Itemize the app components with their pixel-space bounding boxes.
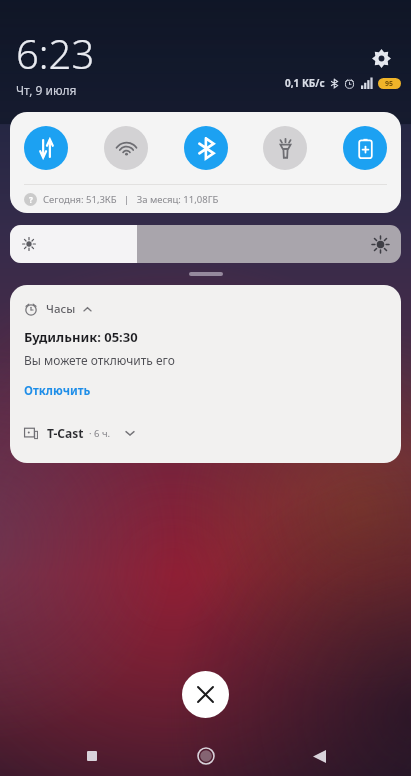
staticText: Часы — [46, 301, 76, 317]
button[interactable]: Bluetooth — [184, 126, 228, 170]
staticText: Будильник: 05:30 — [24, 328, 138, 346]
button[interactable]: Wi-Fi — [104, 126, 148, 170]
button[interactable]: Mobile data — [24, 126, 68, 170]
staticText: T-Cast — [47, 425, 84, 441]
staticText: Вы можете отключить его — [24, 352, 175, 368]
button[interactable]: T-Cast — [24, 425, 135, 441]
staticText: ? — [29, 194, 33, 205]
button[interactable]: Close — [182, 671, 229, 718]
button[interactable]: Brightness — [10, 225, 401, 263]
button[interactable]: Часы — [10, 285, 401, 463]
button[interactable]: Часы — [24, 301, 92, 317]
staticText: 6:23 — [16, 26, 95, 80]
button[interactable]: Отключить — [24, 383, 91, 399]
staticText: Чт, 9 июля — [16, 82, 77, 98]
button[interactable]: Settings — [361, 38, 401, 78]
staticText: 95 — [385, 79, 394, 89]
button[interactable]: Battery saver — [343, 126, 387, 170]
staticText: Сегодня: 51,3КБ | За месяц: 11,08ГБ — [43, 193, 219, 206]
button[interactable]: Back — [298, 736, 340, 776]
button[interactable]: Flashlight — [263, 126, 307, 170]
staticText: · 6 ч. — [89, 427, 111, 440]
button[interactable]: Recents — [71, 736, 113, 776]
staticText: 0,1 КБ/с — [285, 76, 325, 90]
staticText: Отключить — [24, 383, 91, 399]
button[interactable]: Home — [185, 736, 227, 776]
